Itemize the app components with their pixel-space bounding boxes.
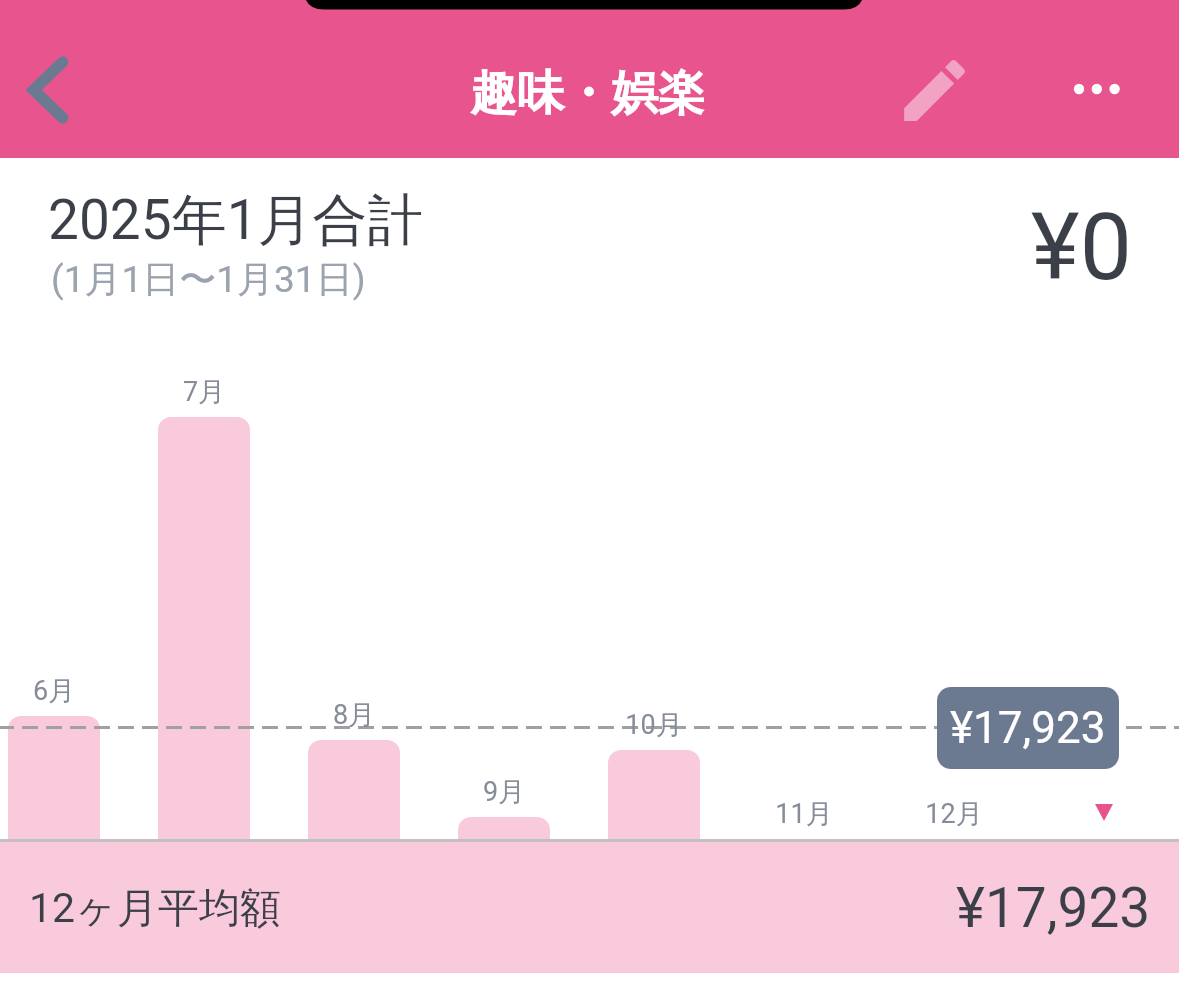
button[interactable]: Edit [894,50,975,131]
button[interactable]: ¥17,923 [937,687,1119,769]
button[interactable]: Back [0,28,96,158]
staticText: (1月1日〜1月31日) [51,256,366,303]
staticText: 10月 [579,708,729,742]
staticText: 12ヶ月平均額 [29,883,282,935]
staticText: ¥0 [900,193,1132,302]
staticText: ¥17,923 [956,876,1151,940]
staticText: 12月 [879,797,1029,831]
staticText: 6月 [0,674,129,708]
staticText: ¥17,923 [950,702,1106,754]
button[interactable]: More options [1055,47,1139,131]
staticText: 11月 [729,797,879,831]
staticText: 2025年1月合計 [48,186,423,255]
staticText: 7月 [129,375,279,409]
staticText: 8月 [279,698,429,732]
staticText: 趣味・娯楽 [470,64,705,123]
staticText: 9月 [429,775,579,809]
